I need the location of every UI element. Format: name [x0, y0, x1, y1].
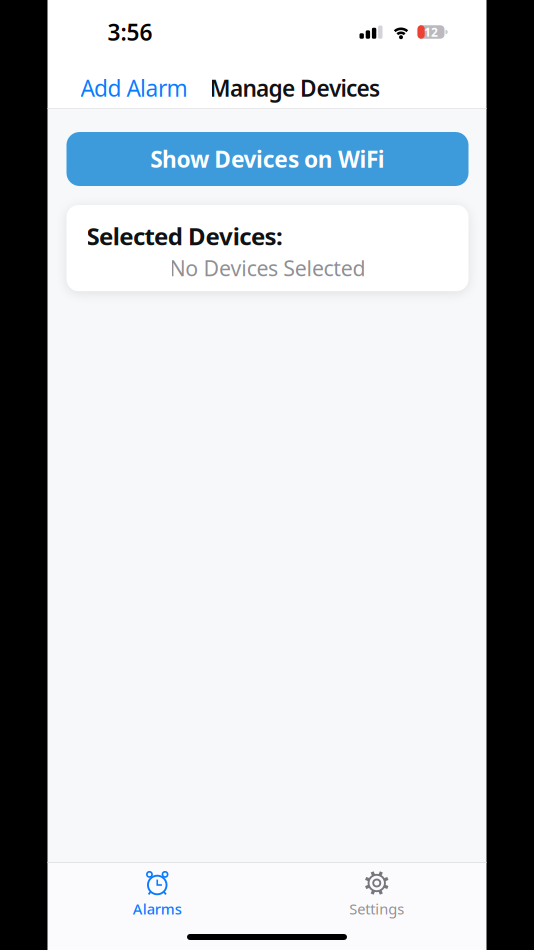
- button[interactable]: Alarms: [47, 870, 267, 918]
- staticText: Show Devices on WiFi: [150, 144, 385, 174]
- button[interactable]: Manage Devices: [209, 73, 380, 103]
- staticText: 3:56: [107, 17, 152, 47]
- staticText: 12: [424, 24, 438, 40]
- staticText: No Devices Selected: [170, 254, 365, 282]
- staticText: Selected Devices:: [86, 220, 283, 252]
- button[interactable]: Show Devices on WiFi: [66, 132, 468, 186]
- staticText: Alarms: [133, 899, 182, 918]
- button[interactable]: Add Alarm: [80, 73, 187, 103]
- staticText: Settings: [349, 899, 404, 918]
- button[interactable]: Settings: [267, 870, 486, 918]
- staticText: Add Alarm: [80, 73, 187, 103]
- staticText: Manage Devices: [209, 73, 380, 103]
